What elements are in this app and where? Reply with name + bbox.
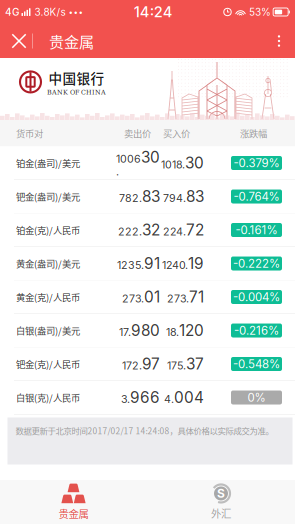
button[interactable]: S — [147, 480, 295, 524]
staticText: 01 — [144, 288, 160, 306]
staticText: 004 — [174, 388, 204, 407]
staticText: 32 — [142, 221, 160, 239]
staticText: 72 — [186, 221, 204, 239]
staticText: 铂金(克)/人民币 — [16, 223, 80, 237]
staticText: -0.764% — [233, 190, 279, 203]
button[interactable]: Close — [0, 24, 32, 58]
staticText: 中国银行 — [48, 68, 104, 88]
button[interactable]: 钯金(盎司)/美元 — [0, 180, 295, 213]
staticText: 53% — [249, 6, 271, 18]
button[interactable]: 白银(盎司)/美元 — [0, 314, 295, 347]
staticText: 1235. — [117, 259, 144, 272]
staticText: 97 — [142, 355, 160, 373]
staticText: 980 — [131, 321, 160, 340]
staticText: -0.222% — [233, 257, 280, 270]
staticText: -0.379% — [233, 156, 279, 170]
staticText: -0.216% — [234, 324, 279, 337]
staticText: 外汇 — [211, 505, 231, 521]
button[interactable]: 贵金属 — [0, 480, 147, 524]
staticText: 30 — [185, 154, 204, 172]
staticText: 18. — [166, 326, 179, 339]
staticText: 71 — [189, 288, 204, 306]
staticText: 黄金(盎司)/美元 — [16, 257, 80, 270]
staticText: ••• — [68, 7, 83, 17]
staticText: 966 — [130, 388, 160, 407]
staticText: 白银(盎司)/美元 — [16, 324, 80, 337]
staticText: 铂金(盎司)/美元 — [16, 156, 80, 170]
staticText: BANK OF CHINA — [47, 89, 106, 96]
staticText: S — [217, 486, 225, 501]
staticText: -0.004% — [233, 290, 280, 304]
staticText: 37 — [186, 355, 204, 373]
button[interactable]: 铂金(盎司)/美元 — [0, 146, 295, 180]
staticText: 222. — [118, 225, 142, 238]
staticText: 贵金属 — [49, 30, 94, 52]
button[interactable]: More options — [263, 24, 295, 58]
staticText: 涨跌幅 — [240, 126, 267, 140]
staticText: 0% — [247, 391, 265, 404]
staticText: 782. — [119, 192, 142, 205]
staticText: 贵金属 — [58, 506, 88, 521]
staticText: 1018. — [161, 158, 185, 171]
button[interactable]: 黄金(盎司)/美元 — [0, 247, 295, 280]
staticText: 3. — [121, 393, 130, 406]
button[interactable]: 铂金(克)/人民币 — [0, 213, 295, 247]
staticText: 273. — [122, 292, 144, 305]
staticText: 19 — [188, 254, 204, 273]
staticText: 买入价 — [163, 126, 190, 140]
staticText: 白银(克)/人民币 — [16, 391, 80, 404]
staticText: 3.8K/s — [34, 6, 65, 18]
staticText: 91 — [144, 254, 160, 273]
staticText: 175. — [167, 359, 186, 372]
staticText: 1240. — [162, 259, 188, 272]
staticText: 数据更新于北京时间2017/02/17 14:24:08，具体价格以实际成交为准… — [15, 424, 273, 437]
staticText: 83 — [142, 187, 160, 206]
staticText: 30 — [141, 148, 160, 166]
staticText: 1006. — [116, 152, 141, 178]
staticText: 货币对 — [16, 126, 43, 140]
staticText: 14:24 — [134, 3, 173, 21]
staticText: 172. — [122, 359, 142, 372]
staticText: 黄金(克)/人民币 — [16, 290, 80, 304]
staticText: 4. — [164, 393, 174, 406]
staticText: 钯金(盎司)/美元 — [16, 190, 80, 203]
staticText: 钯金(克)/人民币 — [16, 357, 80, 371]
button[interactable]: 黄金(克)/人民币 — [0, 280, 295, 314]
staticText: 273. — [167, 292, 189, 305]
staticText: 794. — [163, 192, 186, 205]
staticText: 120 — [179, 321, 204, 340]
button[interactable]: 白银(克)/人民币 — [0, 381, 295, 414]
staticText: 4G — [5, 6, 19, 18]
staticText: -0.548% — [233, 357, 280, 371]
staticText: -0.161% — [235, 223, 277, 237]
button[interactable]: 钯金(克)/人民币 — [0, 347, 295, 381]
staticText: 83 — [186, 187, 204, 206]
staticText: 224. — [163, 225, 186, 238]
staticText: 卖出价 — [124, 126, 151, 140]
staticText: 17. — [119, 326, 131, 339]
